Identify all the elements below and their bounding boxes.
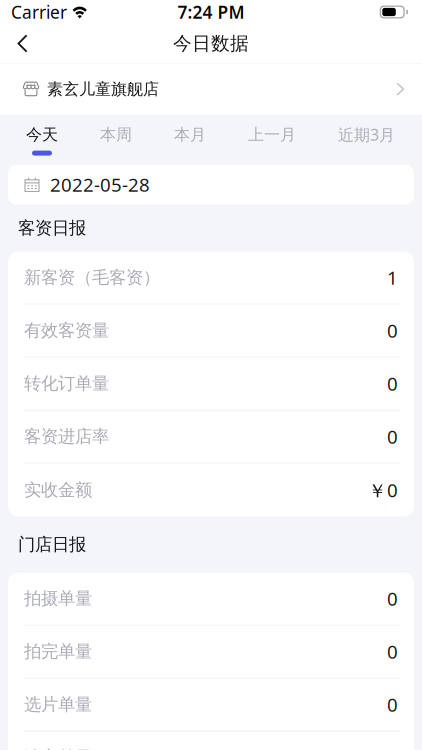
staticText: 0 bbox=[387, 371, 398, 396]
staticText: 0 bbox=[387, 692, 398, 717]
button[interactable]: Back bbox=[0, 24, 55, 63]
staticText: 门店日报 bbox=[18, 534, 86, 555]
staticText: 拍完单量 bbox=[24, 641, 92, 662]
button[interactable]: 本周 bbox=[100, 117, 132, 163]
staticText: 近期3月 bbox=[338, 124, 395, 145]
staticText: ￥0 bbox=[368, 478, 398, 503]
staticText: 实收金额 bbox=[24, 479, 92, 501]
button[interactable]: 上一月 bbox=[248, 117, 296, 163]
staticText: 今天 bbox=[26, 125, 58, 144]
staticText: 本周 bbox=[100, 125, 132, 144]
button[interactable]: 今天 bbox=[26, 117, 58, 163]
staticText: 0 bbox=[387, 318, 398, 343]
staticText: 上一月 bbox=[248, 125, 296, 144]
button[interactable]: 素玄儿童旗舰店 bbox=[0, 64, 422, 115]
staticText: Carrier bbox=[11, 0, 67, 23]
staticText: 今日数据 bbox=[173, 32, 249, 55]
staticText: 转化订单量 bbox=[24, 373, 109, 394]
staticText: 拍摄单量 bbox=[24, 588, 92, 609]
staticText: 选定单量 bbox=[24, 747, 92, 750]
staticText: 客资进店率 bbox=[24, 426, 109, 447]
staticText: 2022-05-28 bbox=[50, 172, 150, 197]
staticText: 选片单量 bbox=[24, 694, 92, 715]
staticText: 0 bbox=[387, 586, 398, 611]
button[interactable]: 本月 bbox=[174, 117, 206, 163]
button[interactable]: 2022-05-28 bbox=[8, 165, 414, 205]
staticText: 客资日报 bbox=[18, 217, 86, 239]
staticText: 7:24 PM bbox=[177, 0, 244, 23]
staticText: 新客资（毛客资） bbox=[24, 267, 160, 288]
staticText: 素玄儿童旗舰店 bbox=[47, 79, 159, 99]
staticText: 有效客资量 bbox=[24, 320, 109, 341]
staticText: 本月 bbox=[174, 125, 206, 144]
button[interactable]: 近期3月 bbox=[338, 117, 395, 163]
staticText: 0 bbox=[387, 424, 398, 449]
staticText: 1 bbox=[387, 265, 398, 290]
staticText: 0 bbox=[387, 639, 398, 664]
